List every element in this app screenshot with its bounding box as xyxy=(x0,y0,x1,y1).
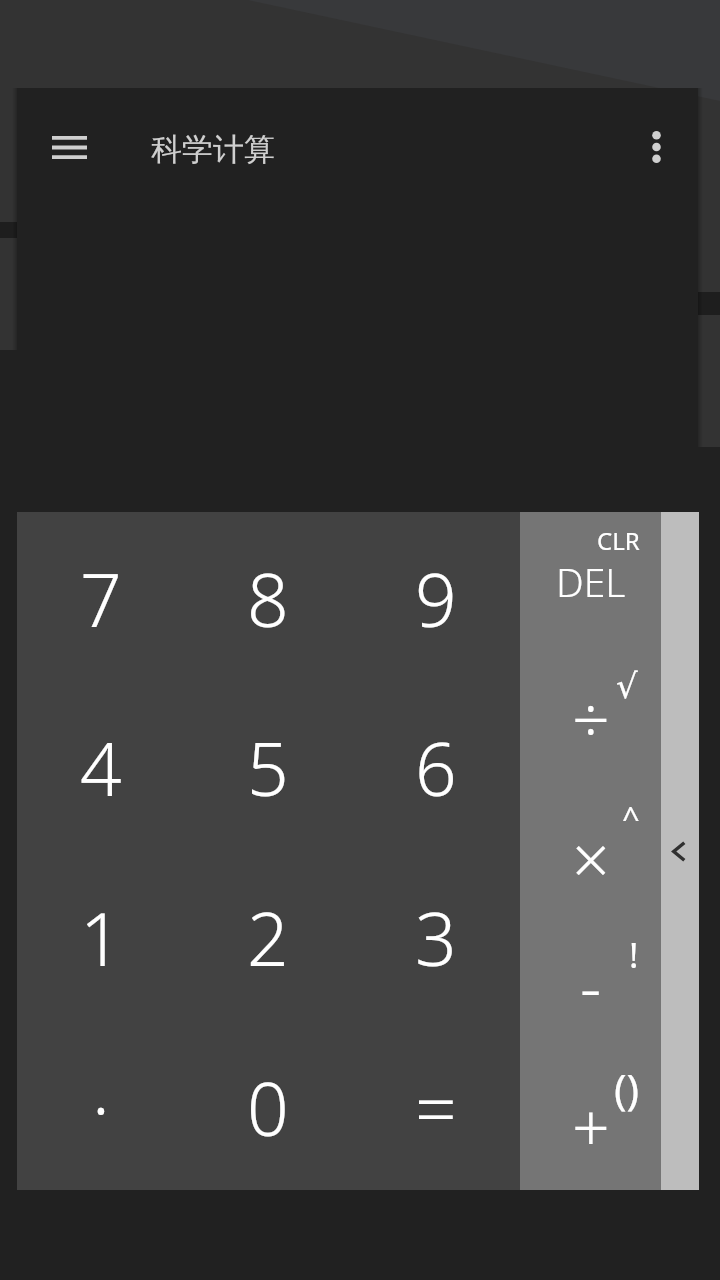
button[interactable]: - xyxy=(520,918,661,1054)
button[interactable]: × xyxy=(520,782,661,918)
staticText: - xyxy=(580,940,602,1030)
staticText: + xyxy=(572,1081,610,1171)
staticText: 3 xyxy=(415,888,457,987)
staticText: · xyxy=(92,1058,110,1157)
staticText: () xyxy=(614,1060,640,1117)
staticText: 0 xyxy=(247,1058,289,1157)
button[interactable]: () xyxy=(614,1060,640,1117)
staticText: 4 xyxy=(80,718,122,817)
button[interactable]: 4 xyxy=(17,681,184,850)
button[interactable]: · xyxy=(17,1020,184,1190)
button[interactable]: = xyxy=(352,1020,520,1190)
staticText: ÷ xyxy=(572,673,610,763)
staticText: × xyxy=(572,813,610,903)
button[interactable]: 0 xyxy=(184,1020,352,1190)
button[interactable]: CLR xyxy=(597,524,640,557)
button[interactable]: More options xyxy=(615,106,697,188)
button[interactable]: 2 xyxy=(184,850,352,1020)
staticText: DEL xyxy=(556,555,626,608)
staticText: 5 xyxy=(247,718,289,817)
staticText: 2 xyxy=(247,888,289,987)
button[interactable]: 3 xyxy=(352,850,520,1020)
staticText: 9 xyxy=(415,549,457,648)
button[interactable]: Show more functions xyxy=(661,512,699,1190)
staticText: 1 xyxy=(80,888,122,987)
button[interactable]: 5 xyxy=(184,681,352,850)
staticText: = xyxy=(415,1058,457,1157)
button[interactable]: + xyxy=(520,1054,661,1190)
staticText: CLR xyxy=(597,524,640,557)
staticText: √ xyxy=(616,666,638,706)
button[interactable]: Open navigation menu xyxy=(28,106,110,188)
staticText: ! xyxy=(629,931,639,979)
button[interactable]: ! xyxy=(629,931,639,979)
button[interactable]: 7 xyxy=(17,512,184,681)
button[interactable]: 6 xyxy=(352,681,520,850)
button[interactable]: 1 xyxy=(17,850,184,1020)
staticText: 6 xyxy=(415,718,457,817)
button[interactable]: 8 xyxy=(184,512,352,681)
button[interactable]: 9 xyxy=(352,512,520,681)
staticText: 8 xyxy=(247,549,289,648)
button[interactable]: DEL xyxy=(520,512,661,647)
button[interactable]: ^ xyxy=(622,796,640,838)
staticText: 7 xyxy=(80,549,122,648)
staticText: 科学计算 xyxy=(151,130,275,169)
button[interactable]: √ xyxy=(616,666,638,706)
staticText: ^ xyxy=(622,796,640,838)
button[interactable]: ÷ xyxy=(520,647,661,782)
